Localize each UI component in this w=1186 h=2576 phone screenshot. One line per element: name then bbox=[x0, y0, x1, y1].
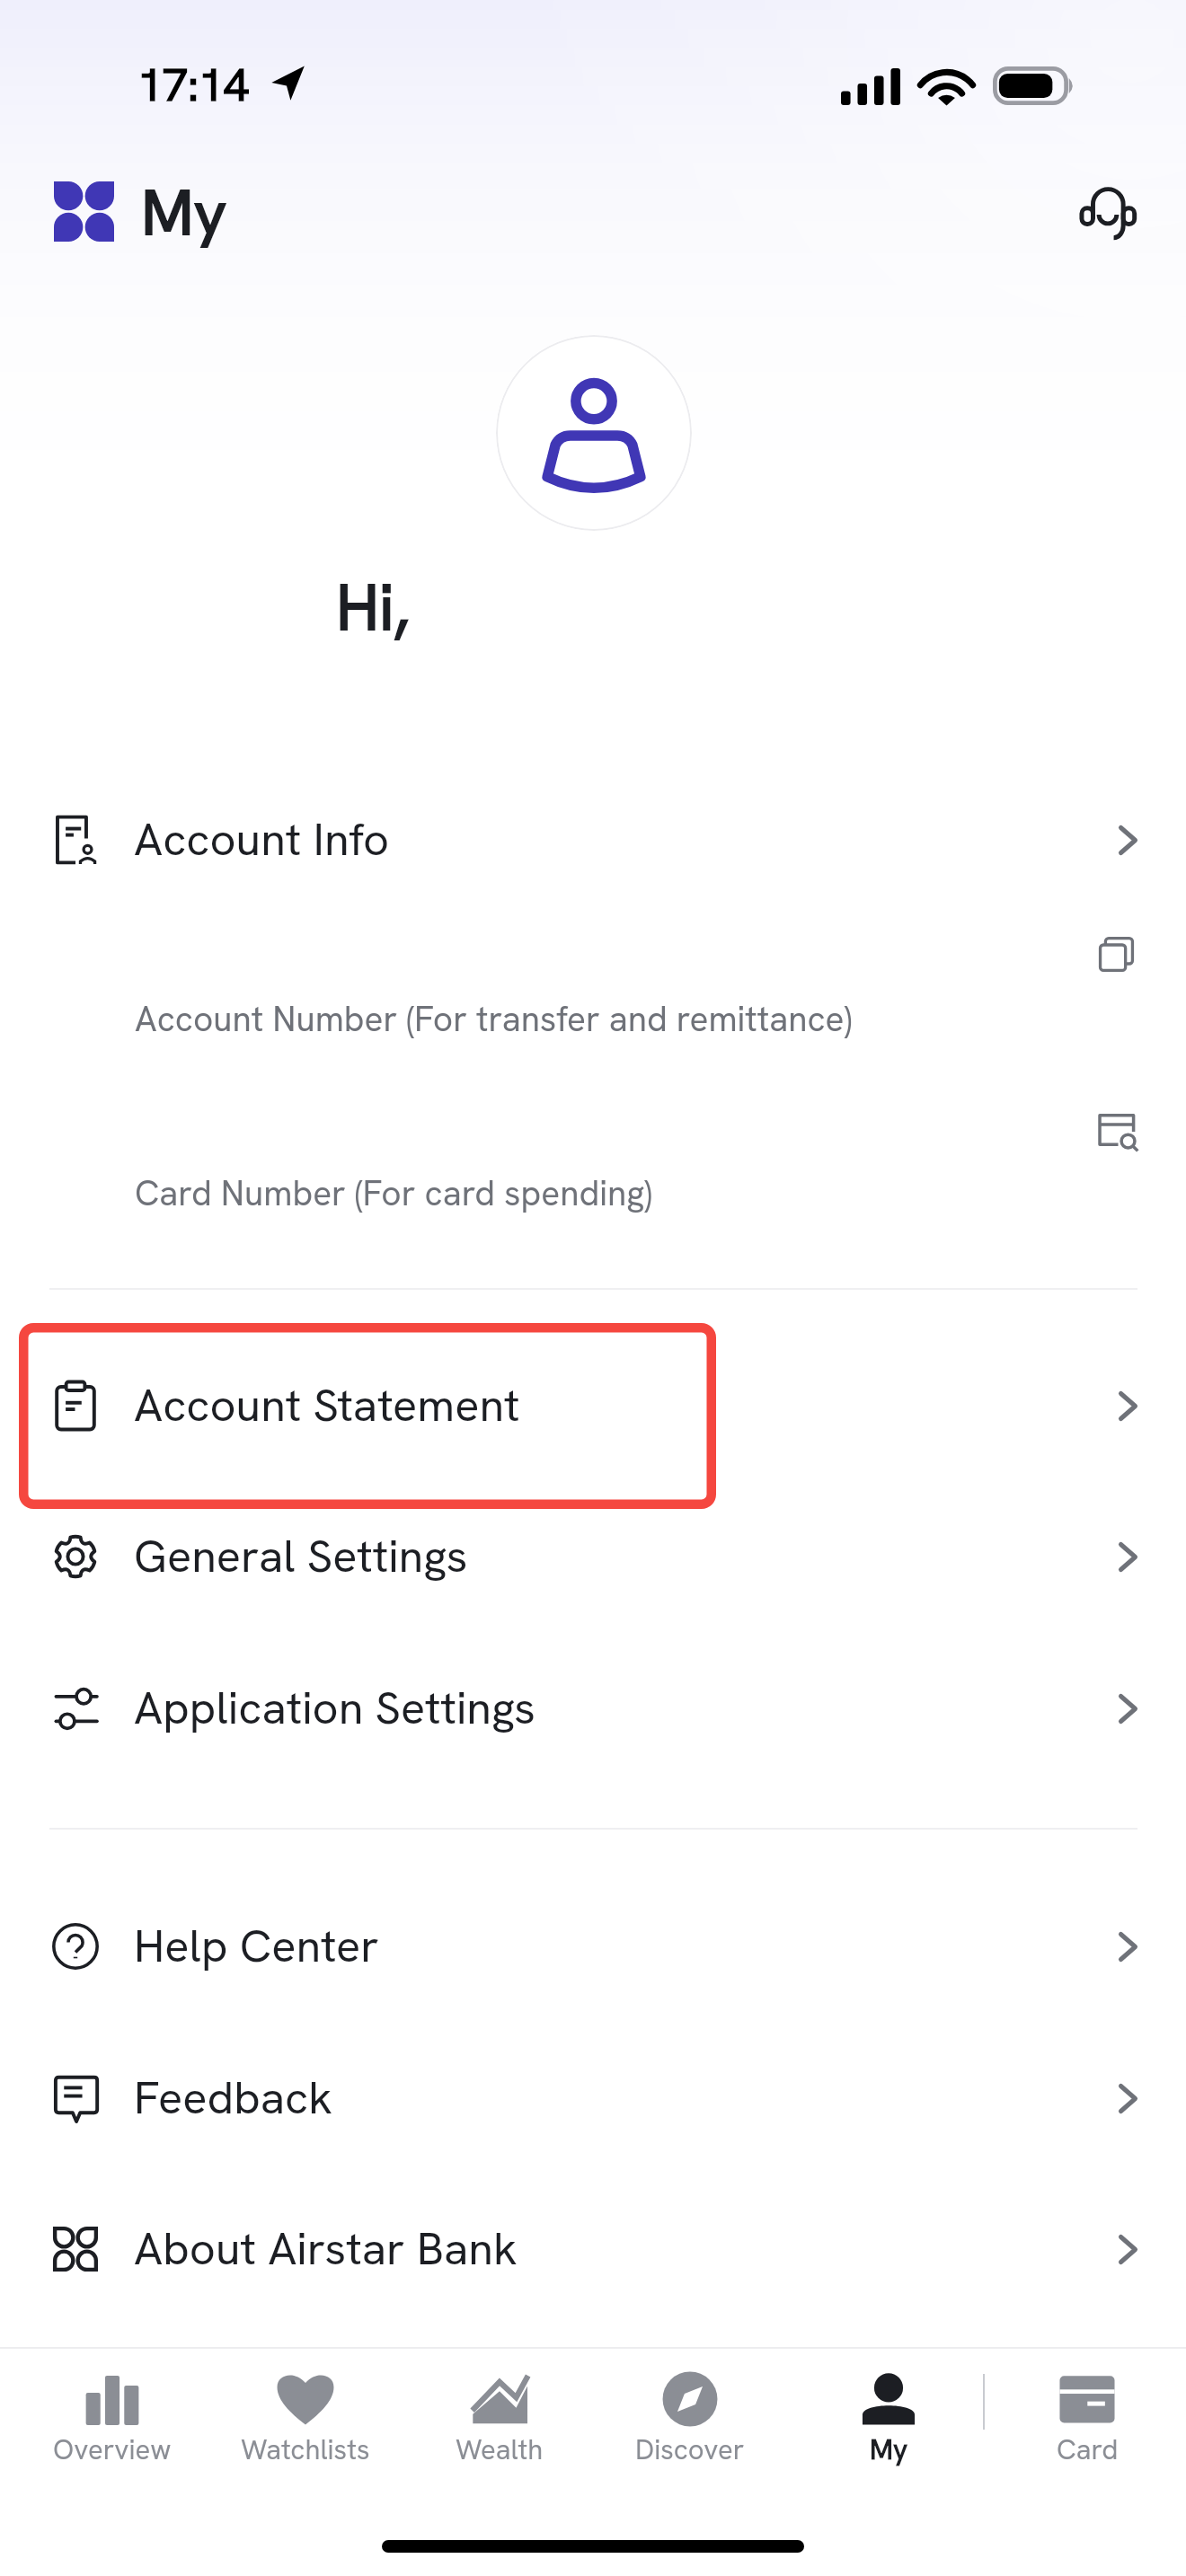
staticText: My bbox=[870, 2431, 908, 2467]
staticText: My bbox=[141, 172, 227, 253]
button[interactable]: Overview bbox=[13, 2353, 211, 2488]
staticText: Hi, bbox=[336, 566, 410, 649]
staticText: Card Number (For card spending) bbox=[135, 1170, 652, 1216]
button[interactable]: Discover bbox=[591, 2353, 789, 2488]
staticText: Help Center bbox=[134, 1916, 379, 1975]
button[interactable]: About Airstar Bank bbox=[0, 2174, 1186, 2325]
button[interactable]: Copy account number bbox=[1078, 916, 1154, 992]
staticText: Account Number (For transfer and remitta… bbox=[135, 996, 853, 1042]
button[interactable]: Account Statement bbox=[0, 1330, 1186, 1481]
staticText: Watchlists bbox=[241, 2431, 370, 2467]
staticText: Account Statement bbox=[134, 1375, 520, 1434]
staticText: Overview bbox=[53, 2431, 172, 2467]
button[interactable]: View card number bbox=[1080, 1094, 1155, 1169]
button[interactable]: Profile photo bbox=[496, 335, 692, 531]
button[interactable]: Wealth bbox=[401, 2353, 598, 2488]
button[interactable]: Card bbox=[988, 2353, 1186, 2488]
staticText: About Airstar Bank bbox=[134, 2219, 518, 2278]
button[interactable]: Customer service bbox=[1069, 176, 1145, 251]
button[interactable]: Feedback bbox=[0, 2023, 1186, 2174]
staticText: Feedback bbox=[134, 2068, 333, 2127]
staticText: Card bbox=[1057, 2431, 1119, 2467]
staticText: General Settings bbox=[134, 1526, 468, 1585]
button[interactable]: Help Center bbox=[0, 1871, 1186, 2022]
button[interactable]: Card Number (For card spending) bbox=[0, 1107, 1186, 1277]
staticText: Application Settings bbox=[134, 1678, 536, 1737]
button[interactable]: My bbox=[790, 2353, 987, 2488]
staticText: 17:14 bbox=[137, 56, 249, 114]
staticText: Discover bbox=[635, 2431, 745, 2467]
staticText: Wealth bbox=[456, 2431, 544, 2467]
button[interactable]: General Settings bbox=[0, 1481, 1186, 1632]
button[interactable]: My bbox=[36, 166, 207, 256]
button[interactable]: Application Settings bbox=[0, 1633, 1186, 1784]
button[interactable]: Account Info bbox=[0, 764, 1186, 915]
button[interactable]: Account Number (For transfer and remitta… bbox=[0, 932, 1186, 1103]
button[interactable]: Watchlists bbox=[207, 2353, 404, 2488]
staticText: Account Info bbox=[134, 809, 390, 869]
